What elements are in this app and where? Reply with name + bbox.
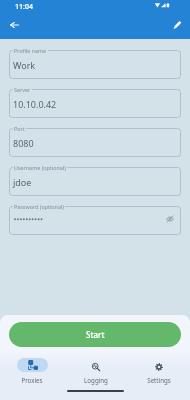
button[interactable]: Edit	[164, 16, 188, 39]
staticText: Settings	[147, 376, 171, 384]
staticText: Work	[13, 59, 36, 71]
staticText: 11:04	[15, 2, 33, 12]
button[interactable]: Password (optional)	[9, 206, 181, 235]
button[interactable]: Profile name	[9, 50, 181, 79]
button[interactable]: Port	[9, 128, 181, 157]
button[interactable]: Server	[9, 89, 181, 118]
button[interactable]: Logging	[64, 358, 127, 384]
staticText: Port	[14, 125, 25, 132]
staticText: Logging	[84, 376, 108, 384]
button[interactable]: Username (optional)	[9, 167, 181, 196]
staticText: 10.10.0.42	[13, 98, 57, 110]
button[interactable]: Start	[9, 322, 181, 347]
staticText: Username (optional)	[14, 164, 66, 171]
button[interactable]: Proxies	[0, 358, 64, 384]
staticText: Start	[86, 329, 105, 340]
staticText: Server	[14, 86, 31, 93]
staticText: jdoe	[13, 176, 32, 188]
staticText: Profile name	[14, 47, 47, 54]
staticText: Proxies	[21, 376, 43, 384]
button[interactable]: Back	[2, 16, 26, 39]
staticText: Password (optional)	[14, 203, 64, 210]
staticText: 8080	[13, 137, 34, 149]
button[interactable]: Settings	[127, 358, 190, 384]
button[interactable]: Show password	[162, 213, 178, 229]
